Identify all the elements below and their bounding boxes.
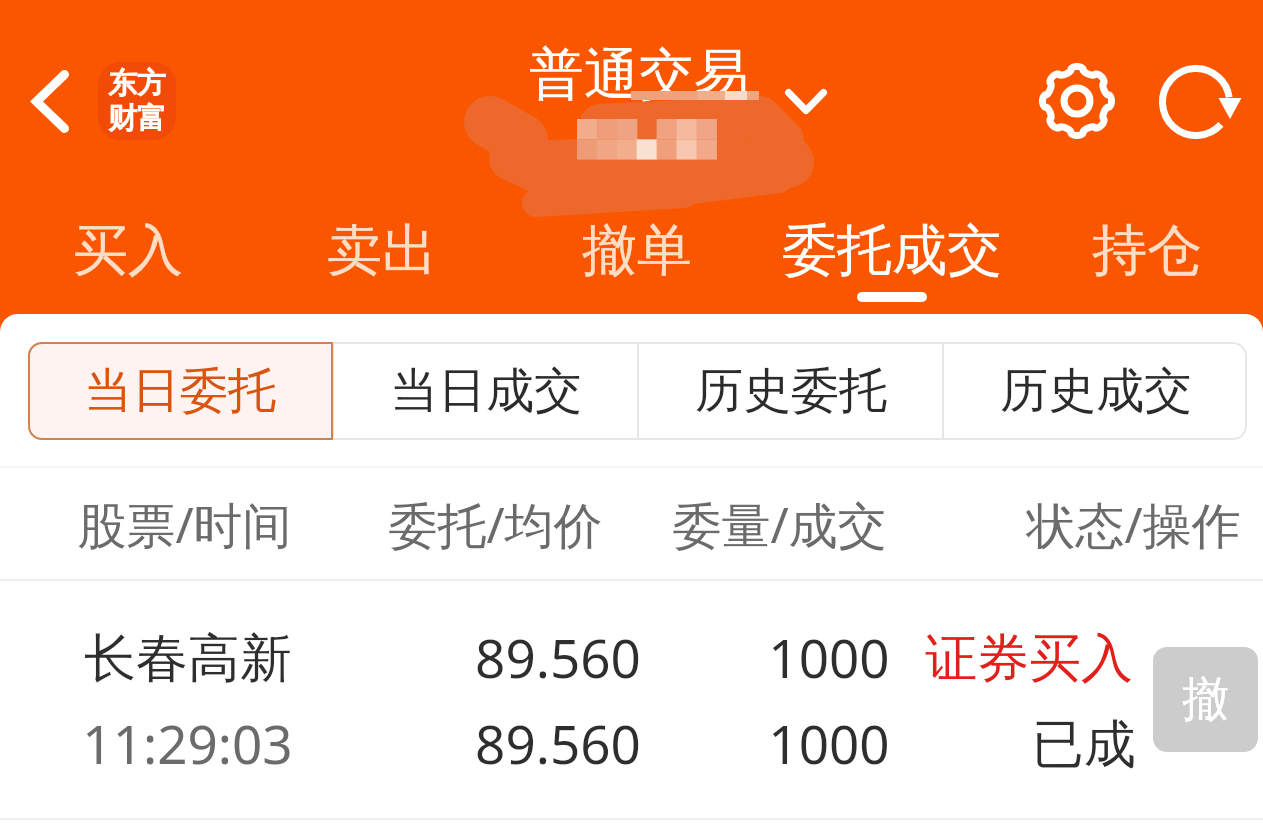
staticText: 撤 [1182,670,1229,729]
staticText: 当日委托 [84,361,276,421]
staticText: 11:29:03 [82,707,293,779]
staticText: 卖出 [327,216,437,285]
button[interactable]: Settings [1035,59,1119,143]
staticText: 长春高新 [84,626,292,692]
button[interactable]: Switch account [770,65,842,137]
button[interactable]: 撤 [1153,647,1258,752]
staticText: 状态/操作 [1026,491,1241,558]
staticText: 普通交易 [529,40,749,104]
staticText: 撤单 [582,216,692,285]
button[interactable]: East Money [98,62,176,140]
button[interactable]: 普通交易 [482,40,796,104]
button[interactable]: Back [10,61,90,141]
staticText: 1000 [768,707,890,779]
button[interactable]: Refresh [1154,60,1238,144]
button[interactable]: 历史委托 [639,342,942,440]
button[interactable]: 当日委托 [28,342,332,440]
staticText: 委量/成交 [672,491,887,558]
staticText: 89.560 [475,707,641,779]
button[interactable]: 当日成交 [334,342,637,440]
button[interactable]: 买入 [1,213,255,314]
staticText: 已成 [1032,712,1136,778]
staticText: 历史委托 [695,361,887,421]
staticText: 1000 [768,621,890,693]
staticText: 历史成交 [1000,361,1192,421]
staticText: 委托/均价 [388,491,603,558]
staticText: 委托成交 [782,216,1002,285]
button[interactable]: 撤单 [510,213,764,314]
button[interactable]: 长春高新 [0,580,1263,819]
staticText: 89.560 [475,621,641,693]
staticText: 证券买入 [925,626,1133,692]
button[interactable]: 持仓 [1020,213,1263,314]
staticText: 股票/时间 [77,491,292,558]
staticText: 持仓 [1092,216,1202,285]
staticText: 买入 [73,216,183,285]
button[interactable]: 历史成交 [944,342,1247,440]
staticText: 当日成交 [390,361,582,421]
button[interactable]: 委托成交 [765,213,1019,314]
staticText: 东方 财富 [108,65,166,137]
button[interactable]: 卖出 [255,213,509,314]
